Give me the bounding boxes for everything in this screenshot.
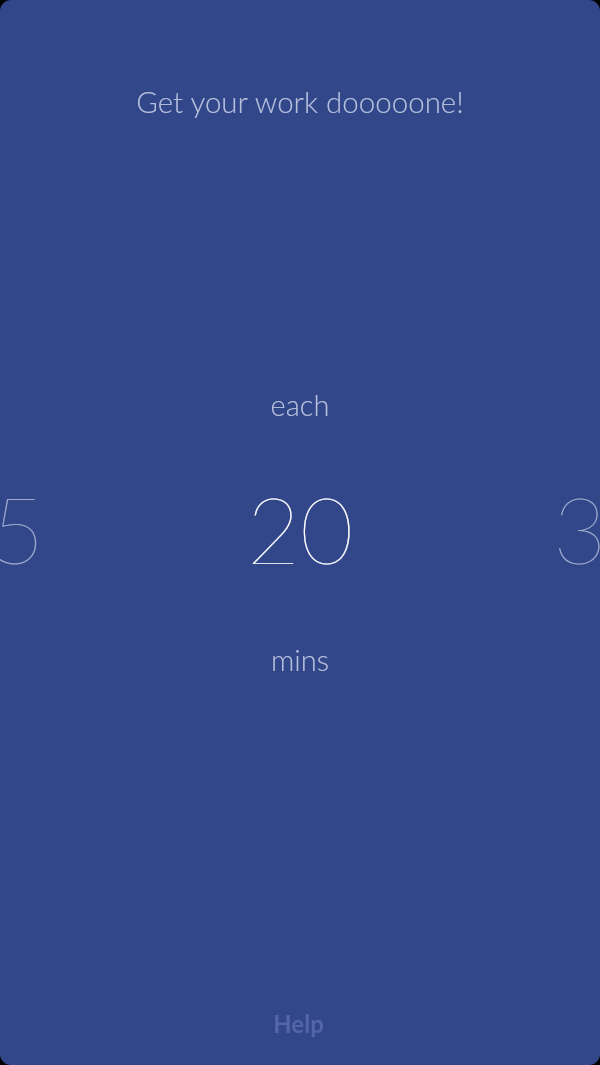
button[interactable]: 15 minutes — [0, 473, 45, 583]
button[interactable]: Help — [0, 1001, 600, 1065]
staticText: mins — [0, 642, 600, 677]
staticText: Help — [273, 1009, 324, 1038]
staticText: each — [0, 387, 600, 422]
button[interactable]: 30 minutes — [553, 473, 600, 583]
staticText: 30 — [553, 473, 600, 583]
button[interactable]: 20 — [0, 473, 600, 583]
staticText: 15 — [0, 473, 45, 583]
staticText: Get your work dooooone! — [0, 84, 600, 119]
